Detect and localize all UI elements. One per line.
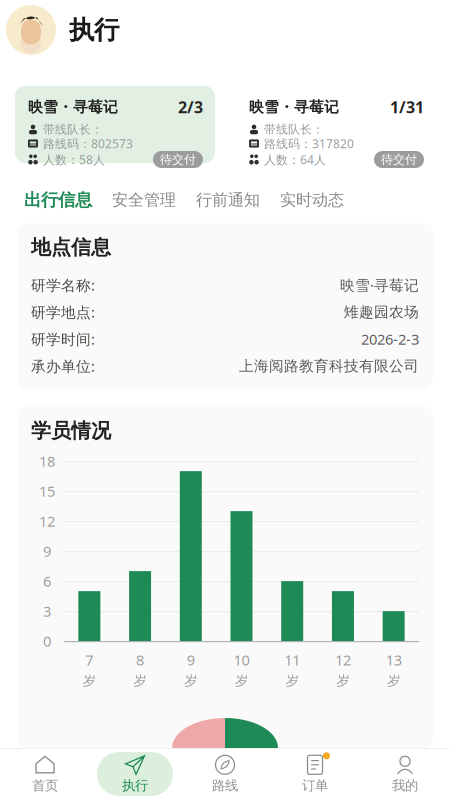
staticText: 18 xyxy=(39,451,55,471)
staticText: 雉趣园农场 xyxy=(344,303,419,321)
staticText: 安全管理 xyxy=(112,190,176,210)
staticText: 订单 xyxy=(302,777,328,794)
staticText: 待交付 xyxy=(160,152,196,167)
staticText: 10 xyxy=(233,650,249,670)
button[interactable]: 首页 xyxy=(0,752,90,796)
staticText: 地点信息 xyxy=(31,235,111,260)
staticText: 研学地点: xyxy=(31,302,95,322)
staticText: 人数：58人 xyxy=(43,151,105,167)
staticText: 岁 xyxy=(184,673,197,689)
staticText: 出行信息 xyxy=(24,189,92,211)
staticText: 映雪・寻莓记 xyxy=(249,98,339,116)
staticText: 研学时间: xyxy=(31,329,95,349)
staticText: 行前通知 xyxy=(196,190,260,210)
button[interactable]: 行前通知 xyxy=(196,179,260,221)
staticText: 岁 xyxy=(235,673,248,689)
staticText: 待交付 xyxy=(381,152,417,167)
staticText: 12 xyxy=(39,511,55,531)
button[interactable]: 执行 xyxy=(90,752,180,796)
staticText: 我的 xyxy=(392,777,418,794)
button[interactable]: 映雪・寻莓记 xyxy=(236,86,436,163)
staticText: 映雪·寻莓记 xyxy=(340,275,419,295)
staticText: 带线队长： xyxy=(264,122,324,137)
button[interactable]: 出行信息 xyxy=(24,179,92,221)
staticText: 首页 xyxy=(32,777,58,794)
staticText: 路线码：317820 xyxy=(264,135,354,151)
staticText: 2/3 xyxy=(178,96,203,118)
staticText: 11 xyxy=(284,650,300,670)
staticText: 15 xyxy=(39,481,55,501)
staticText: 上海阅路教育科技有限公司 xyxy=(239,357,419,375)
staticText: 实时动态 xyxy=(280,190,344,210)
staticText: 13 xyxy=(386,650,402,670)
staticText: 执行 xyxy=(122,777,148,794)
staticText: 岁 xyxy=(336,673,349,689)
staticText: 岁 xyxy=(286,673,299,689)
staticText: 0 xyxy=(43,631,51,651)
staticText: 执行 xyxy=(69,14,119,45)
staticText: 人数：64人 xyxy=(264,151,326,167)
staticText: 路线码：802573 xyxy=(43,135,133,151)
staticText: 8 xyxy=(136,650,144,670)
button[interactable]: 映雪・寻莓记 xyxy=(15,86,215,163)
staticText: 研学名称: xyxy=(31,275,95,295)
staticText: 9 xyxy=(187,650,195,670)
staticText: 岁 xyxy=(387,673,400,689)
button[interactable]: 实时动态 xyxy=(280,179,344,221)
button[interactable]: 路线 xyxy=(180,752,270,796)
staticText: 路线 xyxy=(212,777,238,794)
staticText: 12 xyxy=(335,650,351,670)
staticText: 映雪・寻莓记 xyxy=(28,98,118,116)
staticText: 6 xyxy=(43,571,51,591)
staticText: 3 xyxy=(43,601,51,621)
button[interactable]: 安全管理 xyxy=(112,179,176,221)
staticText: 2026-2-3 xyxy=(361,329,419,349)
staticText: 承办单位: xyxy=(31,356,95,376)
button[interactable]: 订单 xyxy=(270,752,360,796)
staticText: 1/31 xyxy=(390,96,424,118)
button[interactable]: 我的 xyxy=(360,752,450,796)
staticText: 7 xyxy=(85,650,93,670)
staticText: 学员情况 xyxy=(31,419,111,443)
staticText: 岁 xyxy=(134,673,147,689)
staticText: 9 xyxy=(43,541,51,561)
staticText: 岁 xyxy=(83,673,96,689)
staticText: 带线队长： xyxy=(43,122,103,137)
